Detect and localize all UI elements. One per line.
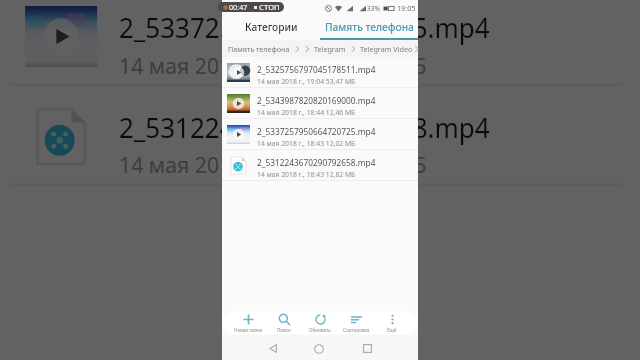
staticText: 14 мая 2018 г., 19:04 53,47 МБ	[257, 77, 356, 86]
button[interactable]: Telegram Video	[358, 44, 415, 54]
button[interactable]: Ещё	[374, 311, 410, 334]
button[interactable]: 2_5312243670290792658.mp4	[222, 150, 418, 180]
staticText: 14 мая 2018 г., 18:43 12,82 МБ	[119, 151, 429, 180]
button[interactable]: Поиск	[266, 311, 302, 334]
staticText: 2_5312243670290792658.mp4	[119, 109, 491, 144]
staticText: Поиск	[277, 327, 291, 333]
button[interactable]: Категории	[222, 16, 320, 38]
button[interactable]: 2_5325756797045178511.mp4	[222, 57, 418, 87]
staticText: 14 мая 2018 г., 18:43 12,02 МБ	[257, 139, 356, 148]
staticText: Обновить	[309, 327, 331, 333]
button[interactable]: 2_5337257950664720725.mp4	[222, 119, 418, 149]
staticText: Сортировка	[343, 327, 370, 333]
button[interactable]: Память телефона	[320, 16, 418, 38]
staticText: 14 мая 2018 г., 18:43 12,82 МБ	[257, 170, 356, 179]
button[interactable]: Telegram	[312, 44, 348, 54]
button[interactable]: 2_5337257950664720725.mp4	[9, 0, 623, 83]
staticText: 2_5337257950664720725.mp4	[257, 126, 376, 137]
button[interactable]: 2_5312243670290792658.mp4	[9, 86, 623, 183]
staticText: СТОП	[259, 2, 280, 12]
staticText: 14 мая 2018 г., 18:44 12,46 МБ	[257, 108, 356, 117]
staticText: Память телефона	[325, 20, 414, 34]
staticText: 2_5312243670290792658.mp4	[257, 157, 376, 168]
staticText: Новая папка	[234, 327, 263, 333]
staticText: 2_5325756797045178511.mp4	[257, 64, 376, 75]
button[interactable]: Сортировка	[338, 311, 374, 334]
staticText: 19:05	[397, 3, 416, 13]
staticText: 2_5337257950664720725.mp4	[119, 9, 491, 45]
button[interactable]: Недавние	[355, 337, 379, 360]
button[interactable]: Память телефона	[226, 44, 292, 54]
button[interactable]: Домой	[307, 337, 331, 360]
staticText: Память телефона	[228, 44, 290, 54]
button[interactable]: Назад	[261, 337, 285, 360]
button[interactable]: Новая папка	[230, 311, 266, 334]
button[interactable]: Обновить	[302, 311, 338, 334]
staticText: Категории	[245, 20, 298, 34]
staticText: 00:47	[229, 2, 248, 12]
staticText: Telegram	[314, 44, 346, 54]
staticText: 2_5343987820820169000.mp4	[257, 95, 376, 106]
staticText: 33%	[367, 4, 381, 13]
staticText: Ещё	[387, 327, 397, 333]
button[interactable]: 2_5343987820820169000.mp4	[222, 88, 418, 118]
staticText: Telegram Video	[360, 44, 413, 54]
staticText: 14 мая 2018 г., 18:43 12,02 МБ	[119, 51, 429, 80]
